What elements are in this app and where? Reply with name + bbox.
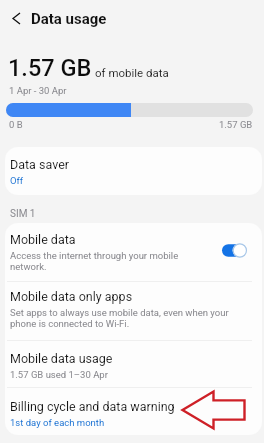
staticText: 1 Apr - 30 Apr	[9, 85, 67, 96]
button[interactable]: Data saver	[5, 147, 262, 195]
staticText: Set apps to always use mobile data, even…	[10, 307, 229, 329]
button[interactable]: Back	[4, 6, 28, 30]
button[interactable]: Mobile data usage	[5, 341, 262, 387]
staticText: Mobile data only apps	[10, 289, 133, 304]
staticText: Data usage	[31, 10, 107, 28]
staticText: Billing cycle and data warning	[10, 399, 175, 414]
button[interactable]: Mobile data	[5, 223, 262, 281]
staticText: 1.57 GB	[219, 119, 253, 130]
staticText: Data saver	[10, 157, 69, 172]
staticText: 1.57 GB	[8, 54, 92, 82]
staticText: SIM 1	[10, 208, 36, 220]
staticText: 1.57 GB used 1–30 Apr	[10, 369, 108, 380]
button[interactable]: Billing cycle and data warning	[5, 388, 262, 435]
staticText: 0 B	[9, 119, 23, 130]
staticText: Mobile data usage	[10, 351, 113, 366]
staticText: of mobile data	[95, 66, 169, 79]
staticText: Access the internet through your mobile …	[10, 250, 179, 272]
button[interactable]: Mobile data only apps	[5, 282, 262, 340]
staticText: Mobile data	[10, 232, 76, 247]
staticText: Off	[10, 175, 24, 186]
button[interactable]: Mobile data switch	[222, 243, 247, 258]
staticText: 1st day of each month	[10, 417, 105, 428]
